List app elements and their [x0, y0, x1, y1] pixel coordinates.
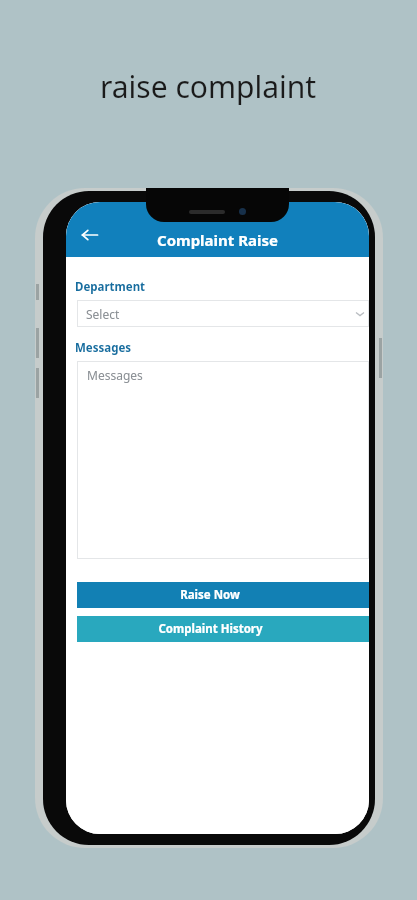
staticText: Messages	[75, 340, 132, 356]
staticText: Complaint Raise	[157, 230, 279, 250]
staticText: Raise Now	[180, 587, 240, 603]
staticText: raise complaint	[100, 66, 317, 107]
staticText: Department	[75, 279, 146, 295]
staticText: Messages	[87, 367, 143, 383]
button[interactable]: Back	[72, 217, 108, 253]
button[interactable]: Messages	[77, 361, 369, 559]
staticText: Select	[86, 306, 120, 322]
staticText: Complaint History	[158, 621, 263, 637]
button[interactable]: Raise Now	[77, 582, 369, 608]
button[interactable]: Complaint History	[77, 616, 369, 642]
button[interactable]: Select	[77, 300, 369, 327]
